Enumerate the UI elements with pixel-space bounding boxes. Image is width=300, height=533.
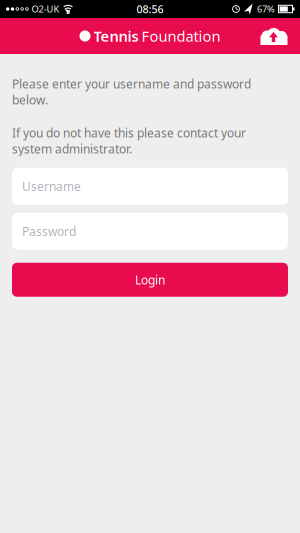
staticText: O2-UK: [32, 3, 60, 15]
staticText: If you do not have this please contact y…: [12, 125, 246, 157]
staticText: 67%: [257, 3, 275, 15]
staticText: Password: [22, 223, 76, 239]
button[interactable]: Username text field: [12, 168, 288, 205]
staticText: Foundation: [141, 26, 220, 46]
button[interactable]: Upload: [260, 28, 288, 45]
staticText: Please enter your username and password …: [12, 76, 251, 108]
staticText: Username: [22, 178, 81, 194]
button[interactable]: Login: [12, 263, 288, 297]
staticText: Login: [135, 272, 165, 288]
staticText: Tennis: [93, 26, 138, 46]
button[interactable]: Password text field: [12, 213, 288, 250]
staticText: 08:56: [136, 2, 163, 16]
